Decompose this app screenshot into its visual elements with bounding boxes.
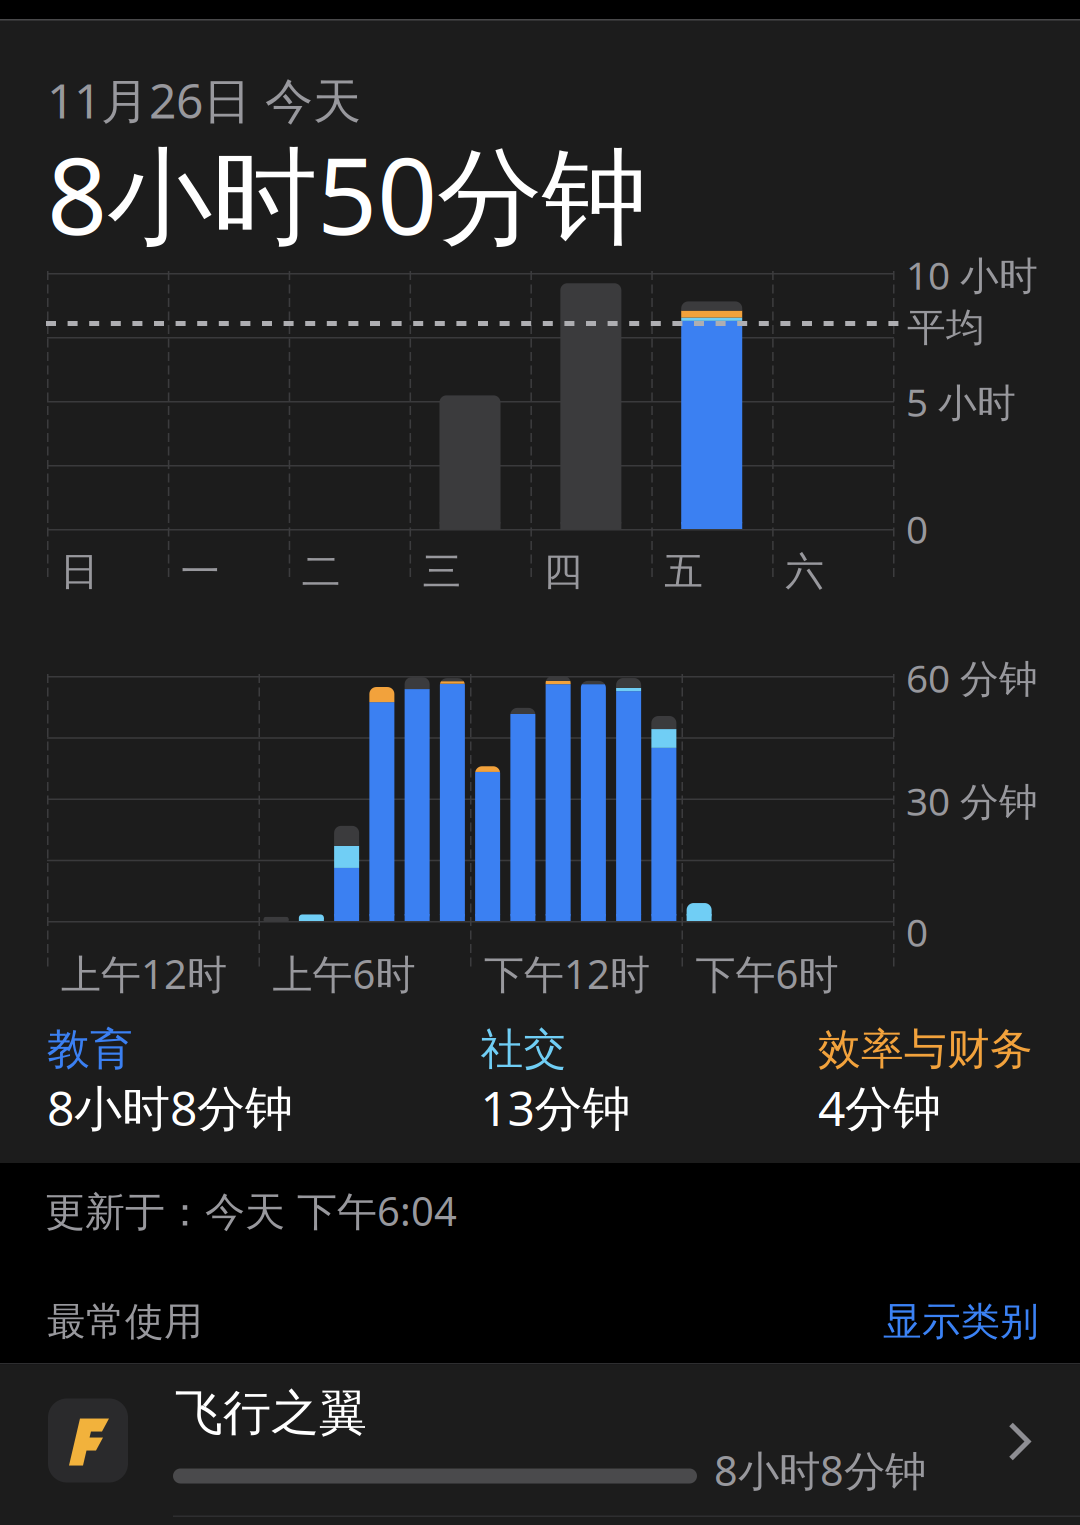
- staticText: 30 分钟: [906, 775, 1038, 826]
- staticText: 4分钟: [818, 1075, 941, 1139]
- staticText: 教育: [47, 1023, 133, 1075]
- staticText: 三: [423, 548, 462, 595]
- staticText: 六: [785, 548, 824, 595]
- staticText: 上午6时: [272, 947, 415, 1000]
- staticText: 10 小时: [906, 249, 1038, 300]
- button[interactable]: 飞行之翼: [0, 1364, 1080, 1525]
- staticText: 更新于：今天 下午6:04: [45, 1184, 457, 1237]
- staticText: 0: [906, 503, 928, 554]
- staticText: 四: [543, 548, 582, 595]
- staticText: 二: [302, 548, 341, 595]
- staticText: 13分钟: [480, 1075, 630, 1139]
- staticText: 11月26日 今天: [47, 68, 361, 132]
- button[interactable]: 显示类别: [883, 1298, 1039, 1345]
- staticText: 8小时8分钟: [47, 1075, 293, 1139]
- staticText: 8小时50分钟: [47, 124, 647, 264]
- staticText: 0: [906, 906, 928, 957]
- staticText: 飞行之翼: [175, 1383, 367, 1442]
- staticText: 下午12时: [484, 947, 650, 1000]
- staticText: 8小时8分钟: [714, 1442, 926, 1497]
- staticText: 日: [60, 548, 99, 595]
- staticText: 上午12时: [61, 947, 227, 1000]
- staticText: 下午6时: [695, 947, 838, 1000]
- staticText: 5 小时: [906, 376, 1016, 427]
- staticText: 最常使用: [47, 1298, 203, 1345]
- staticText: 效率与财务: [818, 1023, 1033, 1075]
- staticText: 社交: [480, 1023, 566, 1075]
- staticText: 平均: [907, 304, 985, 351]
- staticText: 五: [664, 548, 703, 595]
- staticText: 一: [181, 548, 220, 595]
- staticText: 60 分钟: [906, 652, 1038, 703]
- staticText: 显示类别: [883, 1298, 1039, 1345]
